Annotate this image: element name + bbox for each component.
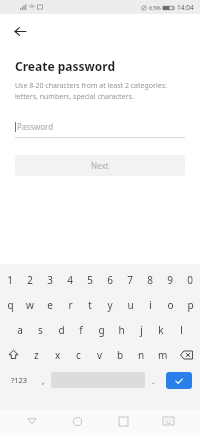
staticText: f [79, 323, 83, 337]
staticText: p [187, 298, 194, 312]
button[interactable]: 3 [40, 267, 60, 292]
button[interactable]: 2 [20, 267, 40, 292]
button[interactable]: Home [63, 409, 91, 433]
button[interactable]: 7 [120, 267, 140, 292]
button[interactable]: r [60, 292, 80, 317]
button[interactable]: Back [8, 19, 32, 43]
button[interactable]: b [110, 342, 131, 367]
button[interactable]: f [71, 317, 91, 342]
staticText: u [127, 298, 134, 312]
staticText: l [180, 323, 183, 337]
button[interactable]: c [68, 342, 89, 367]
staticText: y [107, 298, 113, 312]
staticText: k [158, 323, 164, 337]
staticText: x [55, 348, 61, 362]
button[interactable]: s [30, 317, 51, 342]
button[interactable]: 6 [100, 267, 120, 292]
staticText: q [7, 298, 14, 312]
button[interactable]: y [100, 292, 120, 317]
button[interactable]: Password [15, 115, 185, 137]
button[interactable]: 5 [80, 267, 100, 292]
staticText: j [140, 323, 143, 337]
staticText: n [138, 348, 145, 362]
staticText: r [68, 298, 73, 312]
staticText: a [17, 323, 23, 337]
button[interactable]: Shift [0, 342, 26, 367]
staticText: c [76, 348, 81, 362]
staticText: i [149, 298, 152, 312]
button[interactable]: h [111, 317, 131, 342]
staticText: , [42, 374, 45, 386]
staticText: o [167, 298, 174, 312]
staticText: t [88, 298, 92, 312]
staticText: 8 [147, 273, 153, 287]
button[interactable]: k [151, 317, 171, 342]
button[interactable]: n [131, 342, 152, 367]
button[interactable]: t [80, 292, 100, 317]
staticText: Use 8-20 characters from at least 2 cate… [15, 81, 167, 101]
button[interactable]: j [131, 317, 151, 342]
button[interactable]: , [35, 369, 51, 391]
staticText: 7 [127, 273, 133, 287]
button[interactable]: Recents [109, 409, 137, 433]
button[interactable]: 9 [160, 267, 180, 292]
button[interactable]: Hide keyboard [154, 409, 182, 433]
staticText: v [97, 348, 103, 362]
button[interactable]: v [89, 342, 110, 367]
button[interactable]: u [120, 292, 140, 317]
button[interactable]: m [152, 342, 173, 367]
button[interactable]: i [140, 292, 160, 317]
button[interactable]: o [160, 292, 180, 317]
button[interactable]: a [9, 317, 30, 342]
staticText: w [26, 298, 34, 312]
staticText: 63% [149, 4, 161, 12]
staticText: 4 [67, 273, 73, 287]
button[interactable]: 0 [180, 267, 200, 292]
button[interactable]: z [26, 342, 47, 367]
button[interactable]: g [91, 317, 111, 342]
button[interactable]: . [145, 369, 161, 391]
button[interactable]: e [40, 292, 60, 317]
button[interactable]: 4 [60, 267, 80, 292]
button[interactable]: x [47, 342, 68, 367]
button[interactable]: w [20, 292, 40, 317]
button[interactable]: d [51, 317, 71, 342]
staticText: ?123 [11, 375, 28, 385]
staticText: Create password [15, 58, 115, 74]
staticText: g [98, 323, 105, 337]
staticText: 6 [107, 273, 113, 287]
staticText: Next [91, 160, 109, 171]
staticText: 0 [187, 273, 193, 287]
staticText: 3 [47, 273, 53, 287]
staticText: 1 [7, 273, 13, 287]
staticText: e [47, 298, 53, 312]
staticText: . [152, 374, 155, 386]
button[interactable]: Backspace [173, 342, 200, 367]
button[interactable]: 8 [140, 267, 160, 292]
staticText: m [158, 348, 168, 362]
staticText: 2 [27, 273, 33, 287]
button[interactable]: Next [15, 155, 185, 176]
staticText: 14:04 [177, 3, 194, 12]
staticText: b [117, 348, 124, 362]
button[interactable]: ?123 [3, 369, 35, 391]
button[interactable]: l [171, 317, 191, 342]
staticText: s [38, 323, 43, 337]
staticText: 9 [167, 273, 173, 287]
button[interactable]: 1 [0, 267, 20, 292]
button[interactable]: Done [166, 372, 192, 389]
button[interactable]: q [0, 292, 20, 317]
staticText: d [58, 323, 65, 337]
button[interactable]: p [180, 292, 200, 317]
staticText: z [34, 348, 39, 362]
button[interactable]: Back [18, 409, 46, 433]
staticText: h [118, 323, 125, 337]
staticText: 5 [87, 273, 93, 287]
staticText: Password [17, 121, 54, 132]
